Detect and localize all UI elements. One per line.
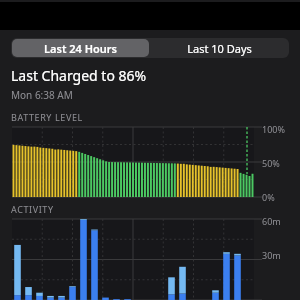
staticText: 0% xyxy=(262,191,275,203)
staticText: Mon 6:38 AM xyxy=(11,88,73,102)
staticText: BATTERY LEVEL xyxy=(11,111,83,123)
button[interactable]: Last 10 Days xyxy=(150,38,289,58)
staticText: ACTIVITY xyxy=(11,203,54,215)
staticText: Last 24 Hours xyxy=(44,41,117,56)
staticText: 100% xyxy=(262,123,285,135)
staticText: Last Charged to 86% xyxy=(11,66,147,85)
staticText: 60m xyxy=(262,215,281,227)
staticText: Last 10 Days xyxy=(187,41,252,56)
staticText: 30m xyxy=(262,249,281,261)
button[interactable]: Last 24 Hours xyxy=(12,39,149,57)
staticText: 50% xyxy=(262,157,280,169)
